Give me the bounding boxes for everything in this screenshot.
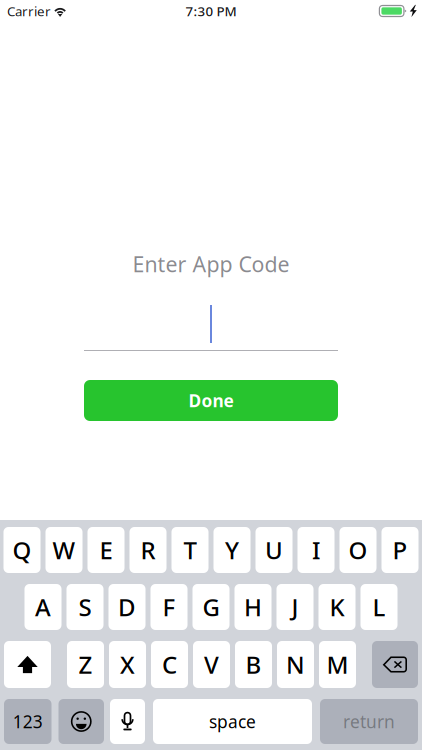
staticText: L [372, 591, 385, 623]
staticText: N [286, 649, 305, 680]
staticText: F [162, 591, 175, 623]
staticText: 7:30 PM [185, 2, 236, 20]
staticText: Enter App Code [132, 250, 289, 278]
staticText: space [209, 710, 256, 733]
staticText: J [291, 591, 298, 623]
button[interactable]: 123 [4, 699, 51, 744]
staticText: I [312, 534, 320, 566]
staticText: X [120, 649, 135, 680]
staticText: return [343, 710, 395, 733]
staticText: T [183, 534, 196, 566]
staticText: H [244, 591, 262, 623]
button[interactable]: V [193, 641, 230, 688]
button[interactable]: D [108, 584, 145, 630]
staticText: Done [188, 389, 233, 412]
button[interactable]: Dictation [110, 699, 145, 744]
button[interactable]: A [24, 584, 61, 630]
button[interactable]: return [320, 699, 418, 744]
button[interactable]: N [277, 641, 314, 688]
button[interactable]: M [319, 641, 356, 688]
button[interactable]: Done [84, 380, 338, 421]
staticText: O [348, 534, 367, 566]
staticText: 123 [13, 710, 43, 733]
button[interactable]: Delete [372, 641, 418, 688]
staticText: Q [12, 534, 31, 566]
staticText: E [99, 534, 112, 566]
staticText: V [204, 649, 219, 680]
button[interactable]: T [171, 527, 208, 573]
staticText: K [329, 591, 344, 623]
button[interactable]: E [87, 527, 124, 573]
button[interactable]: C [151, 641, 188, 688]
button[interactable]: S [66, 584, 103, 630]
button[interactable]: Y [213, 527, 250, 573]
staticText: P [392, 534, 407, 566]
button[interactable]: I [297, 527, 334, 573]
button[interactable]: K [318, 584, 355, 630]
button[interactable]: P [381, 527, 418, 573]
staticText: G [202, 591, 219, 623]
staticText: W [52, 534, 75, 566]
staticText: M [326, 649, 348, 680]
staticText: C [162, 649, 177, 680]
staticText: B [245, 649, 261, 680]
button[interactable]: Z [67, 641, 104, 688]
staticText: Carrier [7, 2, 51, 20]
button[interactable]: W [45, 527, 82, 573]
button[interactable]: G [192, 584, 229, 630]
staticText: S [78, 591, 91, 623]
button[interactable]: L [360, 584, 397, 630]
button[interactable]: X [109, 641, 146, 688]
button[interactable]: O [339, 527, 376, 573]
button[interactable]: F [150, 584, 187, 630]
button[interactable]: B [235, 641, 272, 688]
button[interactable]: space [153, 699, 312, 744]
button[interactable]: Shift [4, 641, 51, 688]
staticText: U [265, 534, 283, 566]
staticText: A [35, 591, 51, 623]
staticText: Y [225, 534, 239, 566]
staticText: D [118, 591, 136, 623]
button[interactable]: Q [3, 527, 40, 573]
staticText: R [140, 534, 155, 566]
staticText: Z [78, 649, 92, 680]
button[interactable]: R [129, 527, 166, 573]
button[interactable]: Emoji [58, 699, 104, 744]
button[interactable]: J [276, 584, 313, 630]
button[interactable]: U [255, 527, 292, 573]
button[interactable]: H [234, 584, 271, 630]
